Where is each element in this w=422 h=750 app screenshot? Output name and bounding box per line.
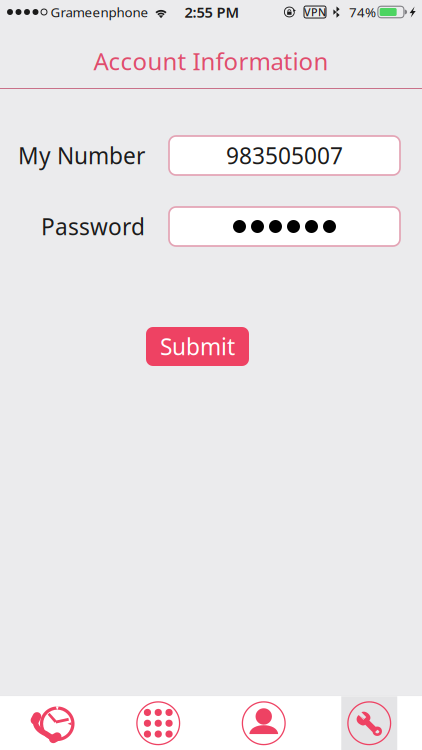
staticText: 2:55 PM [184, 2, 239, 22]
button[interactable]: Contacts [211, 696, 316, 750]
staticText: 74% [349, 3, 376, 21]
staticText: Grameenphone [50, 3, 148, 21]
staticText: Account Information [93, 45, 328, 77]
button[interactable]: Recents [0, 696, 105, 750]
staticText: 983505007 [226, 140, 343, 170]
button[interactable]: Settings [316, 696, 422, 750]
staticText: Password [41, 211, 145, 241]
staticText: Submit [160, 331, 235, 361]
button[interactable]: Keypad [105, 696, 211, 750]
staticText: VPN [304, 5, 326, 19]
button[interactable]: Submit [146, 327, 249, 366]
staticText: My Number [18, 140, 145, 170]
